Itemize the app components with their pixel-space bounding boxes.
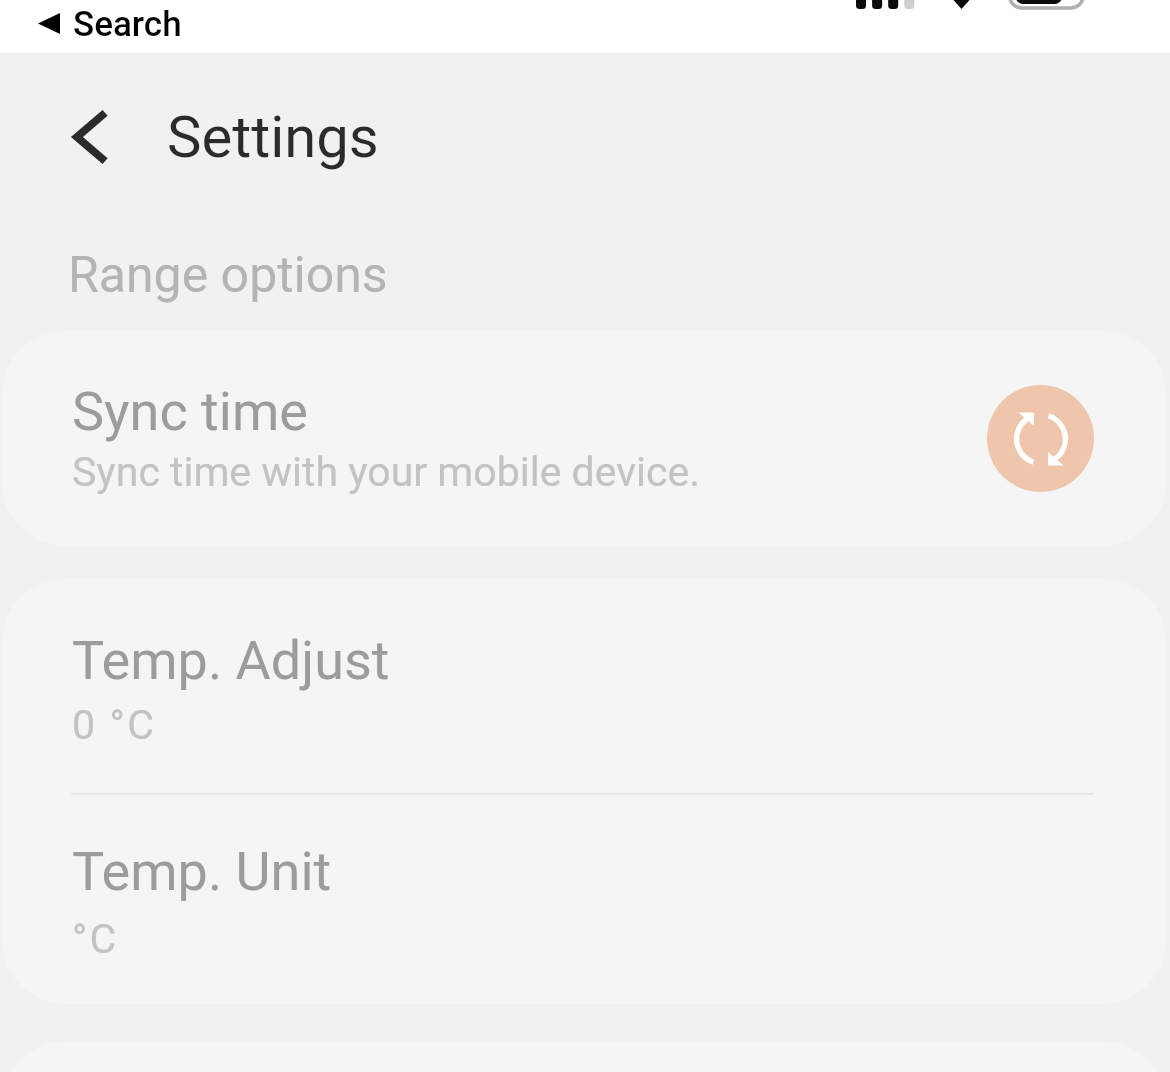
other: Downloading [949,0,974,9]
other: Battery [1008,0,1086,10]
staticText: Temp. Adjust [72,629,390,692]
staticText: Sync time with your mobile device. [72,448,701,496]
button[interactable]: Sync now [987,385,1094,492]
button[interactable]: Search [30,0,195,53]
button[interactable]: Temp. Unit [1,796,1167,1004]
other: Signal strength [856,0,914,9]
button[interactable]: Back [42,83,140,191]
staticText: Range options [68,246,388,305]
staticText: Settings [167,103,379,171]
staticText: Temp. Unit [72,840,332,903]
button[interactable]: Temp. Adjust [1,579,1167,794]
staticText: Search [73,4,182,45]
button[interactable]: Sync time [1,331,1167,546]
staticText: °C [72,915,119,963]
staticText: Sync time [72,380,308,443]
staticText: 0 °C [72,701,157,749]
